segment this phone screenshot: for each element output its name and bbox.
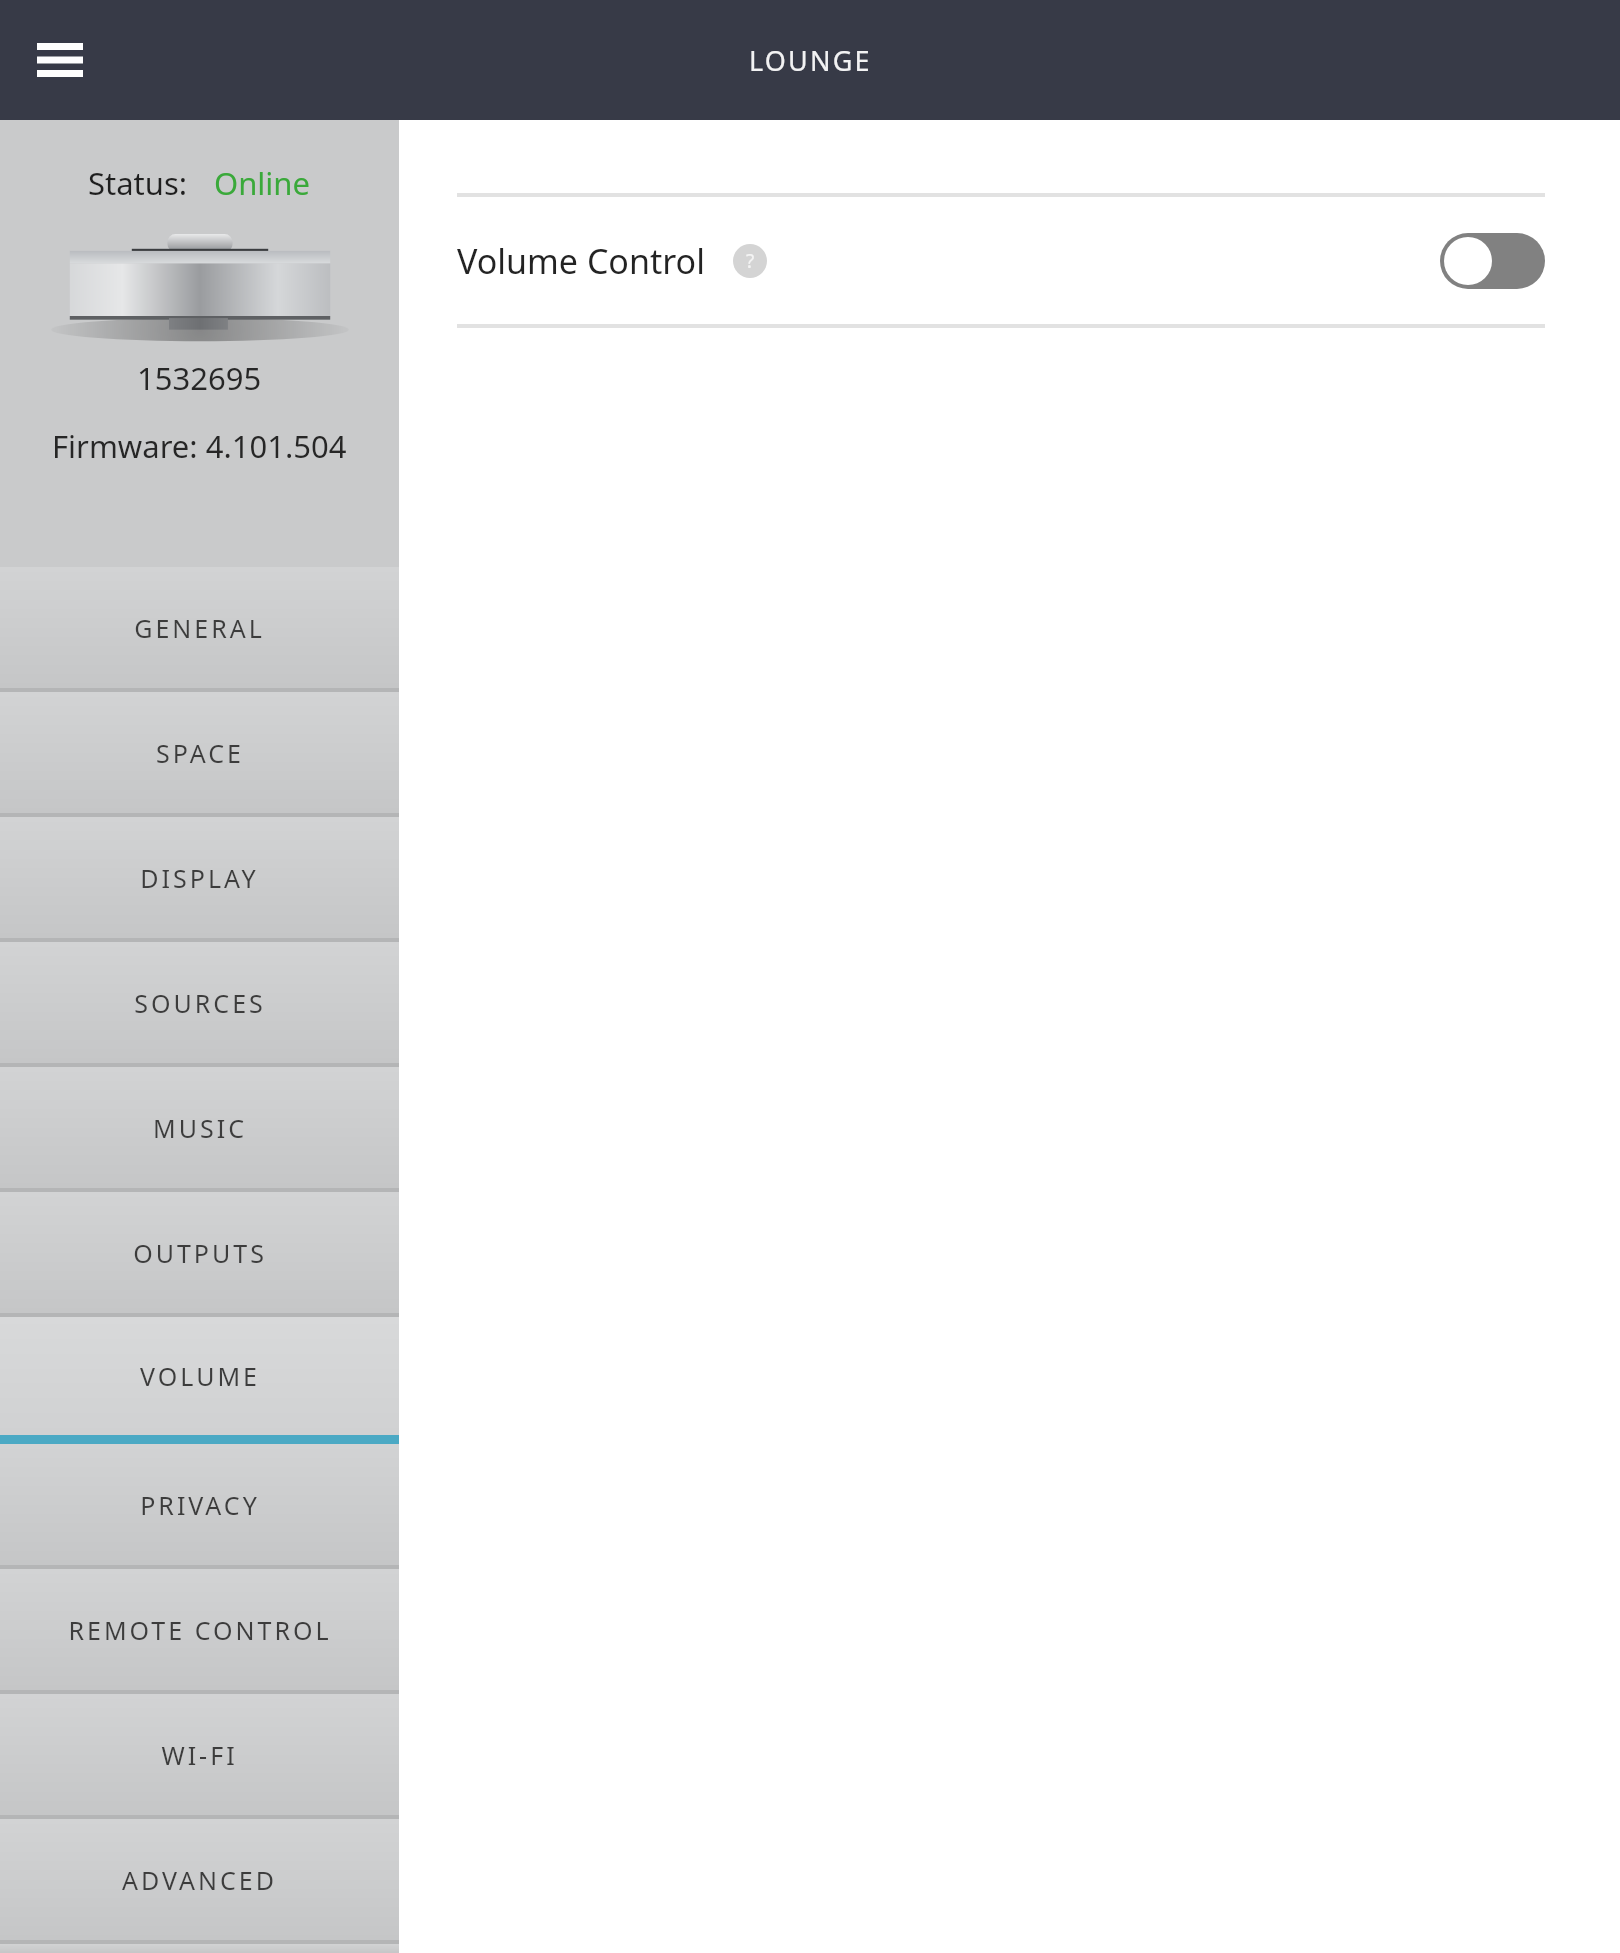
staticText: WI-FI (161, 1738, 238, 1772)
staticText: DISPLAY (140, 861, 259, 895)
staticText: Volume Control (457, 238, 705, 284)
staticText: SPACE (156, 736, 244, 770)
staticText: SUPPORT (133, 1944, 266, 1953)
staticText: REMOTE CONTROL (68, 1613, 332, 1647)
button[interactable]: OUTPUTS (0, 1192, 399, 1313)
button[interactable]: PRIVACY (0, 1444, 399, 1565)
button[interactable]: DISPLAY (0, 817, 399, 938)
button[interactable]: Help about Volume Control (733, 244, 767, 278)
button[interactable]: SOURCES (0, 942, 399, 1063)
button[interactable]: ADVANCED (0, 1819, 399, 1940)
staticText: OUTPUTS (133, 1236, 267, 1270)
staticText: SOURCES (134, 986, 266, 1020)
button[interactable]: REMOTE CONTROL (0, 1569, 399, 1690)
button[interactable]: WI-FI (0, 1694, 399, 1815)
staticText: Status: (88, 162, 188, 204)
button[interactable]: SUPPORT (0, 1944, 399, 1953)
staticText: ? (746, 248, 755, 274)
button[interactable]: SPACE (0, 692, 399, 813)
staticText: ADVANCED (122, 1863, 277, 1897)
staticText: GENERAL (134, 611, 265, 645)
staticText: PRIVACY (140, 1488, 260, 1522)
staticText: Online (214, 162, 311, 204)
staticText: VOLUME (140, 1359, 260, 1393)
staticText: MUSIC (153, 1111, 247, 1145)
staticText: Firmware: 4.101.504 (52, 425, 347, 467)
button[interactable]: GENERAL (0, 567, 399, 688)
staticText: LOUNGE (749, 42, 872, 79)
button[interactable]: MUSIC (0, 1067, 399, 1188)
button[interactable]: VOLUME (0, 1317, 399, 1435)
staticText: 1532695 (137, 357, 262, 399)
button[interactable]: Volume Control (457, 197, 1545, 324)
button[interactable]: Volume Control toggle, off (1440, 233, 1545, 289)
button[interactable]: Open navigation menu (30, 30, 90, 90)
